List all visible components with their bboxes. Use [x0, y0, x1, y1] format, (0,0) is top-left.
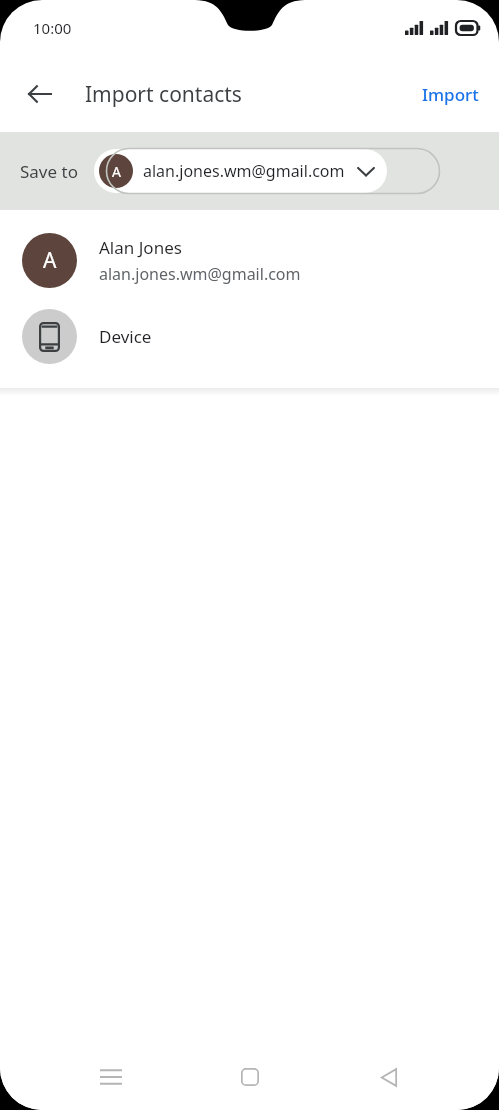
button[interactable]: A: [0, 222, 499, 298]
staticText: alan.jones.wm@gmail.com: [99, 263, 301, 285]
staticText: Save to: [20, 160, 78, 183]
staticText: Device: [99, 325, 152, 348]
staticText: 10:00: [33, 18, 72, 38]
staticText: alan.jones.wm@gmail.com: [143, 160, 345, 182]
button[interactable]: Back: [360, 1049, 416, 1105]
button[interactable]: Device: [0, 298, 499, 374]
staticText: Import contacts: [85, 80, 242, 109]
staticText: Alan Jones: [99, 236, 182, 259]
button[interactable]: Recents: [83, 1049, 139, 1105]
staticText: A: [43, 246, 57, 275]
staticText: A: [112, 162, 121, 181]
staticText: Import: [422, 83, 479, 106]
button[interactable]: A: [94, 149, 387, 193]
button[interactable]: Import: [412, 75, 489, 114]
button[interactable]: Home: [222, 1049, 278, 1105]
button[interactable]: Back: [16, 70, 64, 118]
